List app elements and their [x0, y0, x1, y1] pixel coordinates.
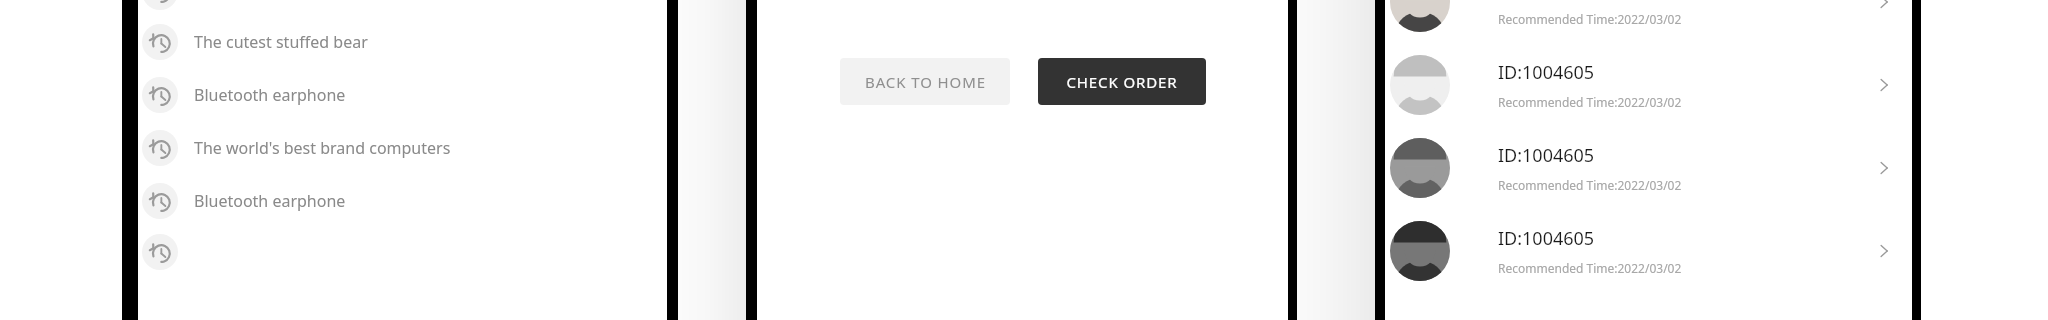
button[interactable]: The world's best brand computers	[122, 126, 496, 170]
other: Open detail	[1864, 0, 1904, 22]
other: Open detail	[1864, 65, 1904, 105]
staticText: ID:1004605	[1498, 143, 1595, 168]
button[interactable]: Bluetooth earphone	[122, 73, 496, 117]
staticText: CHECK ORDER	[1066, 72, 1178, 92]
button[interactable]: CHECK ORDER	[1038, 58, 1206, 105]
staticText: Bluetooth earphone	[194, 190, 346, 212]
staticText: Bluetooth earphone	[194, 84, 346, 106]
button[interactable]: ID:1004605	[1385, 43, 1912, 126]
button[interactable]: Bluetooth earphone	[122, 179, 496, 223]
staticText: Recommended Time:2022/03/02	[1498, 11, 1682, 27]
staticText: BACK TO HOME	[865, 72, 986, 92]
staticText: ID:1004605	[1498, 60, 1595, 85]
staticText: The world's best brand computers	[194, 137, 451, 159]
staticText: ID:1004605	[1498, 226, 1595, 251]
other: Open detail	[1864, 148, 1904, 188]
button[interactable]: ID:1004605	[1385, 126, 1912, 209]
staticText: Recommended Time:2022/03/02	[1498, 177, 1682, 193]
button[interactable]: ID:1004605	[1385, 209, 1912, 292]
button[interactable]	[122, 230, 496, 274]
staticText: The cutest stuffed bear	[194, 31, 368, 53]
staticText: Recommended Time:2022/03/02	[1498, 94, 1682, 110]
button[interactable]: ID:1004605	[1385, 0, 1912, 43]
button[interactable]	[122, 0, 496, 14]
button[interactable]: BACK TO HOME	[840, 58, 1010, 105]
other: Open detail	[1864, 231, 1904, 271]
button[interactable]: The cutest stuffed bear	[122, 20, 496, 64]
staticText: Recommended Time:2022/03/02	[1498, 260, 1682, 276]
